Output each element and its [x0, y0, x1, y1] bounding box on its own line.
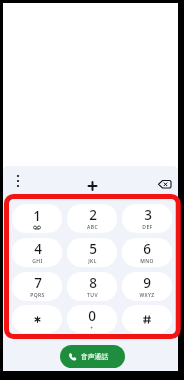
staticText: 0 [88, 307, 96, 325]
staticText: ABC [87, 224, 98, 231]
button[interactable] [122, 305, 172, 333]
staticText: PQRS [30, 292, 45, 299]
button[interactable]: 3 [122, 204, 172, 233]
staticText: 1 [33, 207, 41, 225]
button[interactable]: 1 [12, 204, 62, 233]
staticText: 4 [34, 240, 42, 258]
staticText: + [90, 325, 94, 332]
button[interactable]: 9 [122, 272, 172, 301]
staticText: TUV [87, 292, 98, 299]
button[interactable]: 2 [67, 204, 117, 233]
button[interactable]: 5 [67, 238, 117, 267]
staticText: GHI [32, 258, 43, 265]
button[interactable] [152, 172, 176, 194]
staticText: WXYZ [139, 292, 155, 299]
button[interactable]: 7 [12, 272, 62, 301]
button[interactable]: 4 [12, 238, 62, 267]
button[interactable]: 0 [67, 305, 117, 333]
button[interactable]: 音声通話 [60, 345, 125, 368]
staticText: 音声通話 [81, 352, 109, 361]
button[interactable]: 8 [67, 272, 117, 301]
button[interactable] [8, 172, 28, 192]
staticText: 3 [144, 206, 152, 224]
staticText: 2 [89, 206, 97, 224]
staticText: 5 [89, 240, 97, 258]
staticText: JKL [88, 258, 97, 265]
staticText: 7 [34, 274, 42, 292]
staticText: 8 [89, 274, 97, 292]
staticText: MNO [140, 258, 154, 265]
staticText: 6 [143, 240, 151, 258]
staticText: 9 [143, 274, 151, 292]
button[interactable] [12, 305, 62, 333]
staticText: DEF [142, 224, 153, 231]
button[interactable] [82, 174, 103, 194]
button[interactable]: 6 [122, 238, 172, 267]
